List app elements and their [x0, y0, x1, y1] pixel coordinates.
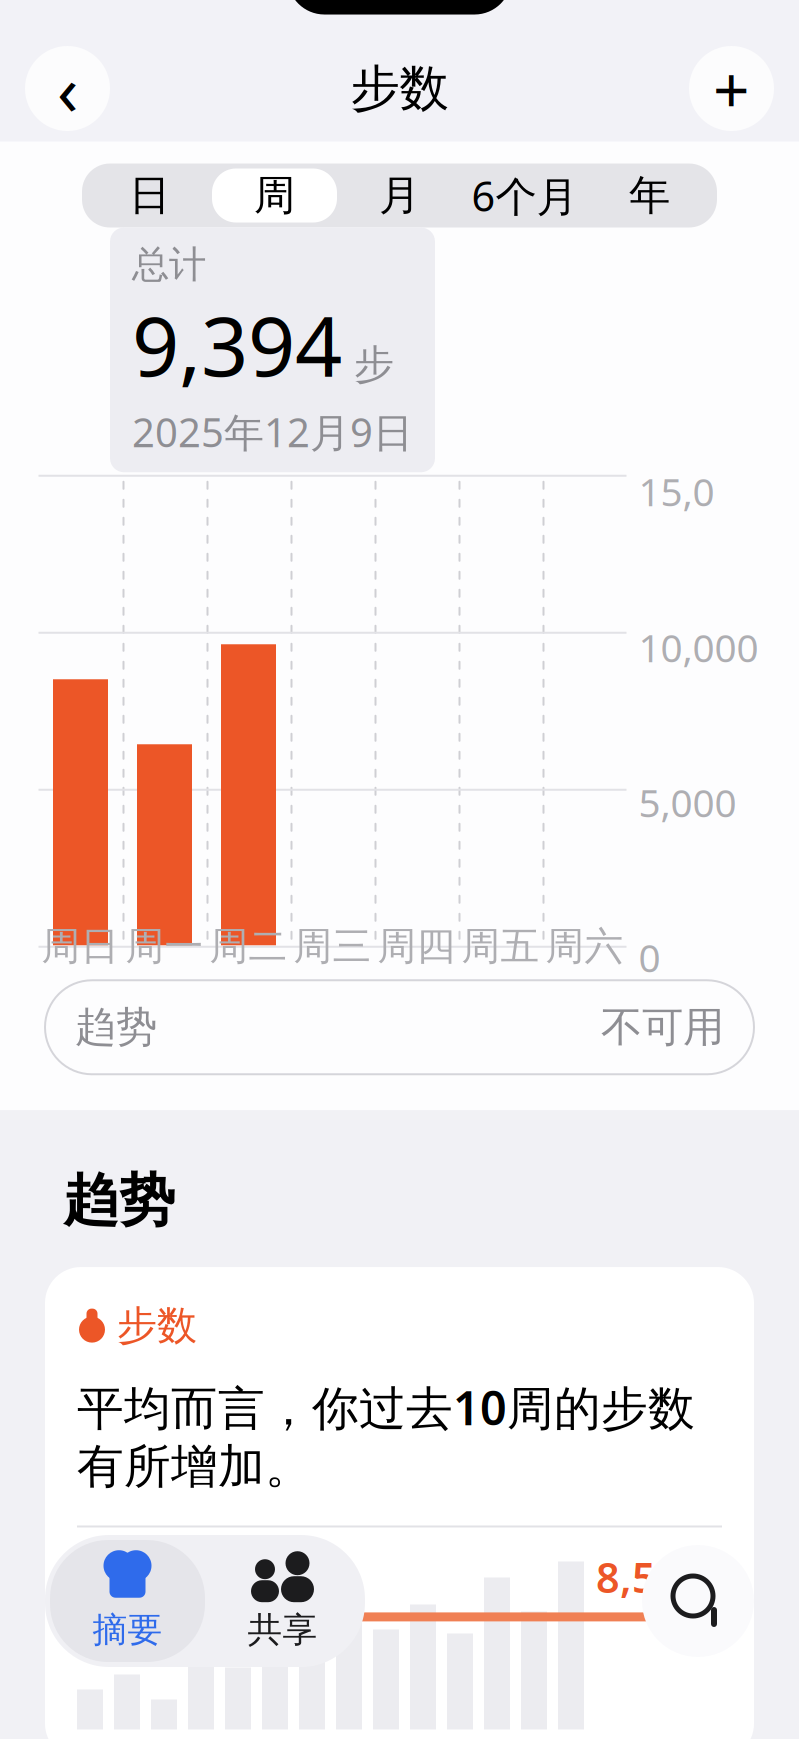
staticText: 年: [629, 170, 670, 221]
staticText: 8,576: [596, 1549, 704, 1604]
button[interactable]: 添加数据: [689, 46, 774, 131]
staticText: 0: [638, 932, 660, 983]
staticText: 周五: [461, 922, 539, 970]
staticText: 10,000: [638, 622, 758, 673]
staticText: 周一: [125, 922, 203, 970]
staticText: 趋势: [75, 1002, 157, 1053]
staticText: 2025年12月9日: [132, 405, 413, 458]
staticText: 周四: [377, 922, 455, 970]
staticText: 周日: [41, 922, 119, 970]
staticText: 步数: [350, 58, 448, 119]
staticText: 5,000: [638, 777, 736, 828]
staticText: 周六: [545, 922, 623, 970]
staticText: 平均而言，你过去10周的步数有所增加。: [77, 1376, 695, 1495]
staticText: 不可用: [601, 1002, 724, 1053]
staticText: 摘要: [92, 1609, 162, 1651]
button[interactable]: 周: [212, 168, 337, 222]
staticText: 步: [354, 340, 394, 389]
staticText: 日: [129, 170, 170, 221]
button[interactable]: 月: [337, 168, 462, 222]
staticText: 月: [379, 170, 420, 221]
button[interactable]: 返回: [25, 42, 110, 135]
staticText: 9,394: [132, 289, 342, 399]
button[interactable]: 共享: [205, 1540, 360, 1662]
staticText: 共享: [247, 1609, 317, 1651]
staticText: 周三: [293, 922, 371, 970]
button[interactable]: 搜索: [642, 1545, 754, 1657]
button[interactable]: 6个月: [462, 168, 587, 222]
button[interactable]: 摘要: [50, 1540, 205, 1662]
staticText: 15,0: [638, 466, 714, 517]
button[interactable]: 趋势: [45, 980, 754, 1074]
button[interactable]: 年: [587, 168, 712, 222]
staticText: 6个月: [471, 168, 577, 223]
staticText: ‹: [57, 42, 78, 135]
staticText: +: [713, 46, 750, 131]
staticText: 周二: [209, 922, 287, 970]
button[interactable]: 日: [87, 168, 212, 222]
staticText: 步数: [117, 1301, 197, 1350]
staticText: 总计: [132, 241, 206, 287]
staticText: 周: [254, 170, 295, 221]
staticText: 趋势: [63, 1166, 175, 1235]
